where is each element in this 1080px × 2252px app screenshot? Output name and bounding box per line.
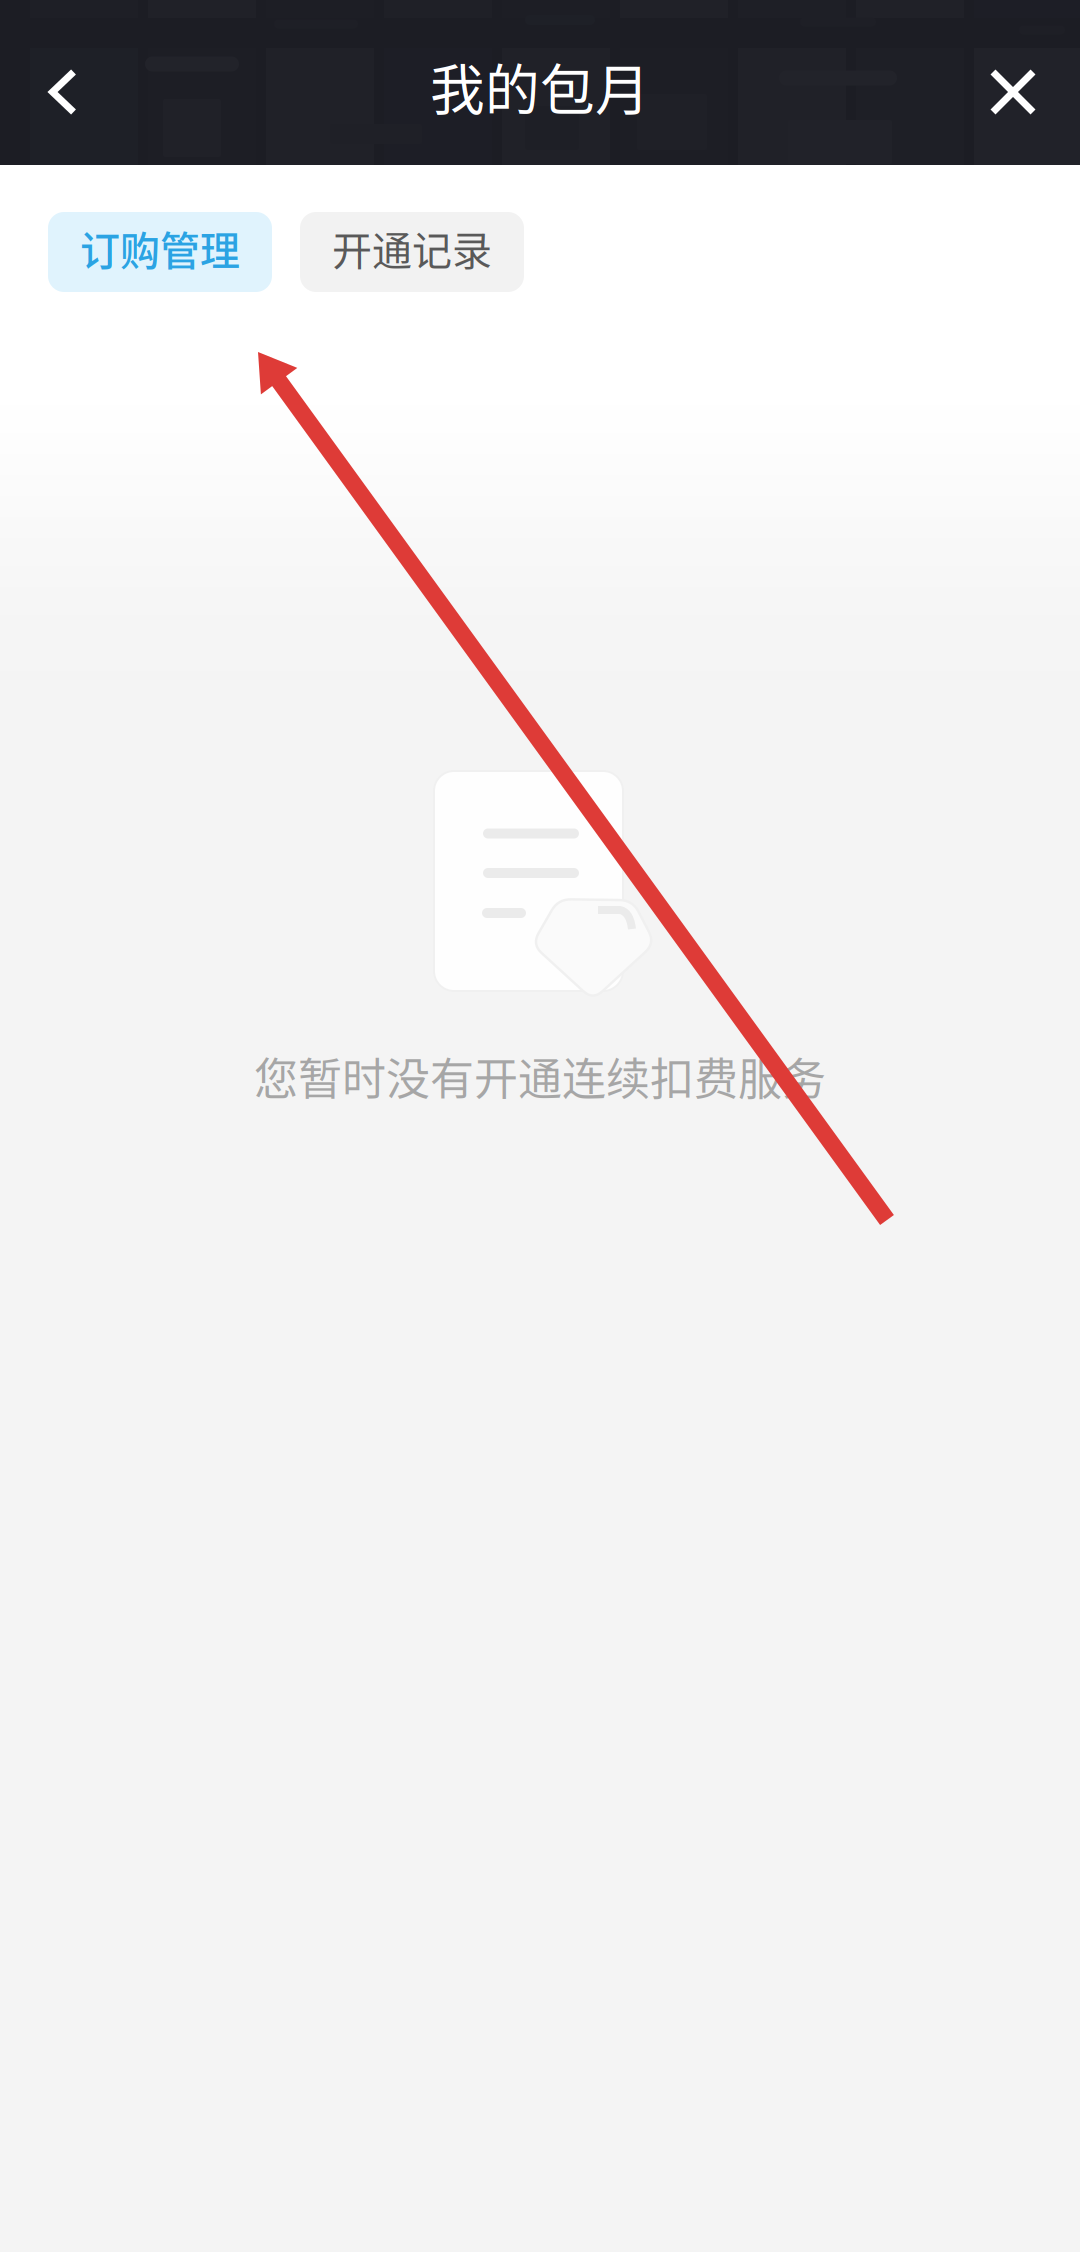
staticText: 开通记录 — [332, 219, 492, 277]
button[interactable]: Back — [20, 37, 106, 147]
button[interactable]: 开通记录 — [300, 212, 524, 292]
button[interactable]: Close — [963, 37, 1063, 147]
staticText: 您暂时没有开通连续扣费服务 — [254, 1044, 826, 1108]
staticText: 订购管理 — [80, 219, 240, 277]
staticText: 我的包月 — [430, 46, 650, 126]
button[interactable]: 订购管理 — [48, 212, 272, 292]
